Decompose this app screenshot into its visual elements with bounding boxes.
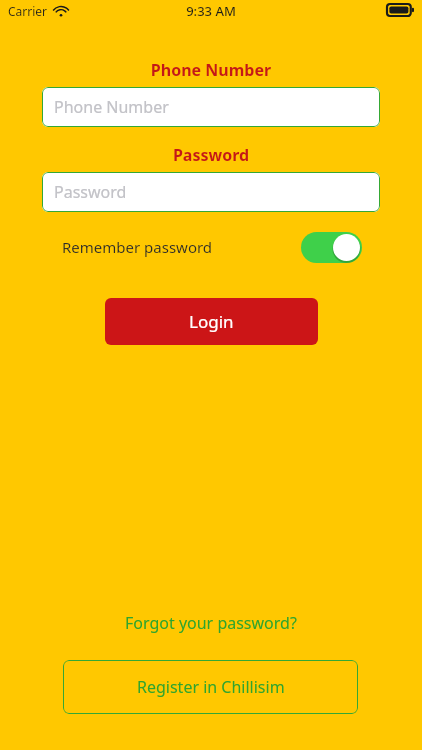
staticText: Remember password [62,237,213,257]
staticText: 9:33 AM [0,2,422,20]
staticText: Password [0,144,422,166]
button[interactable]: Register in Chillisim [63,660,358,714]
button[interactable]: Phone Number [42,87,380,127]
staticText: Forgot your password? [125,612,297,634]
staticText: Register in Chillisim [137,676,285,698]
staticText: Login [189,310,234,333]
button[interactable]: Forgot your password? [0,610,422,636]
button[interactable]: Password [42,172,380,212]
staticText: Phone Number [54,96,169,118]
button[interactable]: Remember password toggle [301,232,362,263]
staticText: Carrier [8,3,48,19]
staticText: Phone Number [0,59,422,81]
button[interactable]: Remember password [62,231,362,263]
button[interactable]: Login [105,298,318,345]
staticText: Password [54,181,127,203]
